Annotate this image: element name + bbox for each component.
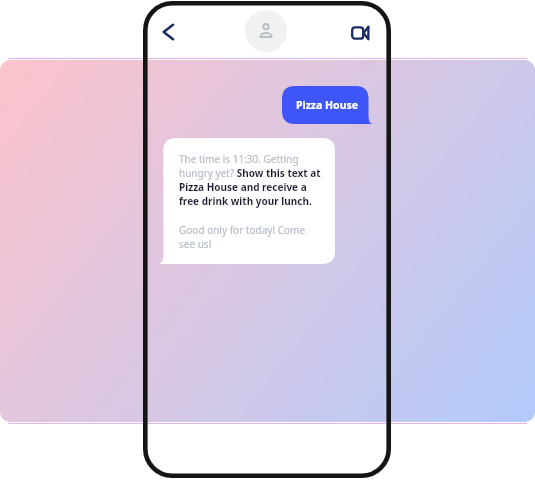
button[interactable]: Back [154,18,182,46]
staticText: Pizza House [296,98,358,112]
button[interactable]: Profile [245,10,287,52]
staticText: The time is 11:30. Getting hungry yet? S… [179,152,321,208]
staticText: Good only for today! Come see us! [179,223,321,251]
button[interactable]: Video call [347,19,375,47]
